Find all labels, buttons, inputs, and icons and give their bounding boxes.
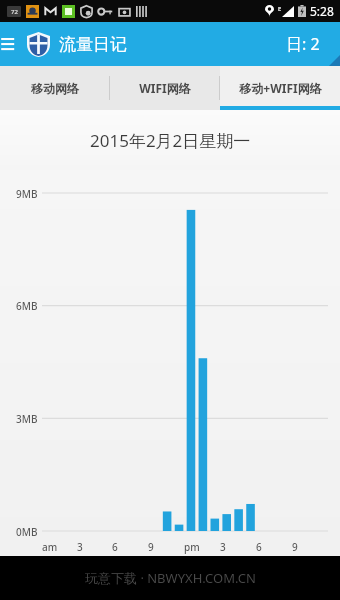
staticText: 流量日记 [59, 34, 127, 55]
staticText: 72 [11, 8, 18, 16]
staticText: WIFI网络 [139, 80, 191, 96]
button[interactable]: 移动网络 [0, 66, 109, 110]
staticText: pm [184, 540, 200, 554]
staticText: 6 [256, 540, 262, 554]
staticText: 0MB [16, 525, 38, 539]
staticText: 2015年2月2日星期一 [90, 129, 251, 152]
staticText: 6 [112, 540, 118, 554]
staticText: am [42, 540, 58, 554]
staticText: 玩意下载 · NBWYXH.COM.CN [85, 569, 256, 587]
staticText: 移动+WIFI网络 [239, 80, 322, 96]
staticText: 3 [77, 540, 83, 554]
button[interactable]: 日: 2 [286, 33, 320, 55]
staticText: 3 [220, 540, 226, 554]
staticText: 日: 2 [286, 33, 320, 55]
button[interactable]: Menu [3, 26, 27, 62]
staticText: E [278, 5, 282, 13]
staticText: 5:28 [310, 3, 334, 19]
staticText: 9 [148, 540, 154, 554]
button[interactable]: 移动+WIFI网络 [220, 66, 340, 110]
staticText: 移动网络 [31, 81, 79, 96]
staticText: 6MB [16, 299, 38, 313]
button[interactable]: WIFI网络 [110, 66, 219, 110]
staticText: 9 [292, 540, 298, 554]
staticText: 9MB [16, 187, 38, 201]
staticText: 3MB [16, 412, 38, 426]
